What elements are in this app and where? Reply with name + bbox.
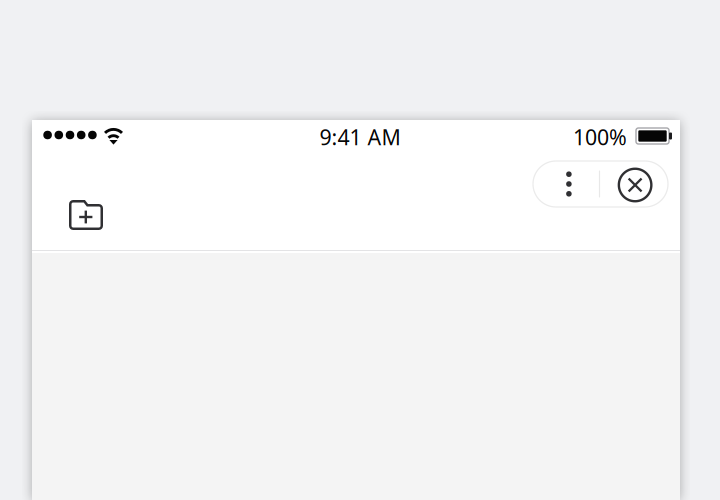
button[interactable]: More options [533, 161, 599, 207]
staticText: 100% [573, 123, 627, 151]
staticText: 9:41 AM [319, 123, 400, 151]
button[interactable]: New folder [61, 193, 111, 237]
button[interactable]: Close [600, 161, 668, 207]
